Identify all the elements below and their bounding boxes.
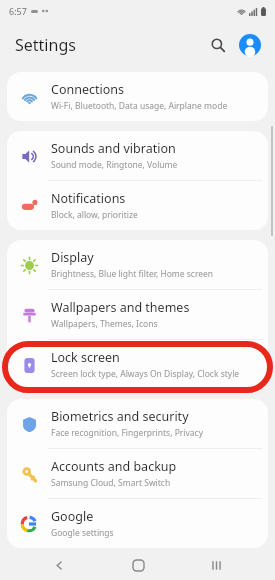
staticText: Face recognition, Fingerprints, Privacy	[51, 427, 203, 439]
button[interactable]: Notifications	[7, 181, 268, 230]
staticText: Wallpapers and themes	[51, 299, 190, 316]
staticText: Settings	[15, 34, 76, 56]
button[interactable]: Google	[7, 499, 268, 548]
staticText: Brightness, Blue light filter, Home scre…	[51, 268, 214, 280]
button[interactable]: Search	[205, 32, 231, 58]
staticText: Screen lock type, Always On Display, Clo…	[51, 368, 240, 380]
button[interactable]: Lock screen	[7, 340, 268, 389]
staticText: Display	[51, 249, 94, 266]
button[interactable]: Biometrics and security	[7, 399, 268, 448]
staticText: Sound mode, Ringtone, Volume	[51, 159, 178, 171]
staticText: Google settings	[51, 527, 114, 539]
button[interactable]: Display	[7, 240, 268, 289]
staticText: Google	[51, 508, 94, 525]
button[interactable]: Recents	[196, 550, 236, 580]
staticText: Sounds and vibration	[51, 140, 176, 157]
staticText: Lock screen	[51, 349, 120, 366]
staticText: Notifications	[51, 190, 126, 207]
staticText: Block, allow, prioritize	[51, 209, 138, 221]
button[interactable]: Wallpapers and themes	[7, 290, 268, 339]
staticText: Wi-Fi, Bluetooth, Data usage, Airplane m…	[51, 100, 228, 112]
button[interactable]: Account	[237, 32, 263, 58]
staticText: Biometrics and security	[51, 408, 189, 425]
staticText: 6:57	[9, 5, 27, 17]
staticText: Wallpapers, Themes, Icons	[51, 318, 158, 330]
button[interactable]: Back	[39, 550, 79, 580]
button[interactable]: Sounds and vibration	[7, 131, 268, 180]
button[interactable]: Accounts and backup	[7, 449, 268, 498]
staticText: Samsung Cloud, Smart Switch	[51, 477, 171, 489]
button[interactable]: Connections	[7, 72, 268, 121]
button[interactable]: Home	[118, 550, 158, 580]
staticText: Connections	[51, 81, 124, 98]
staticText: Accounts and backup	[51, 458, 177, 475]
